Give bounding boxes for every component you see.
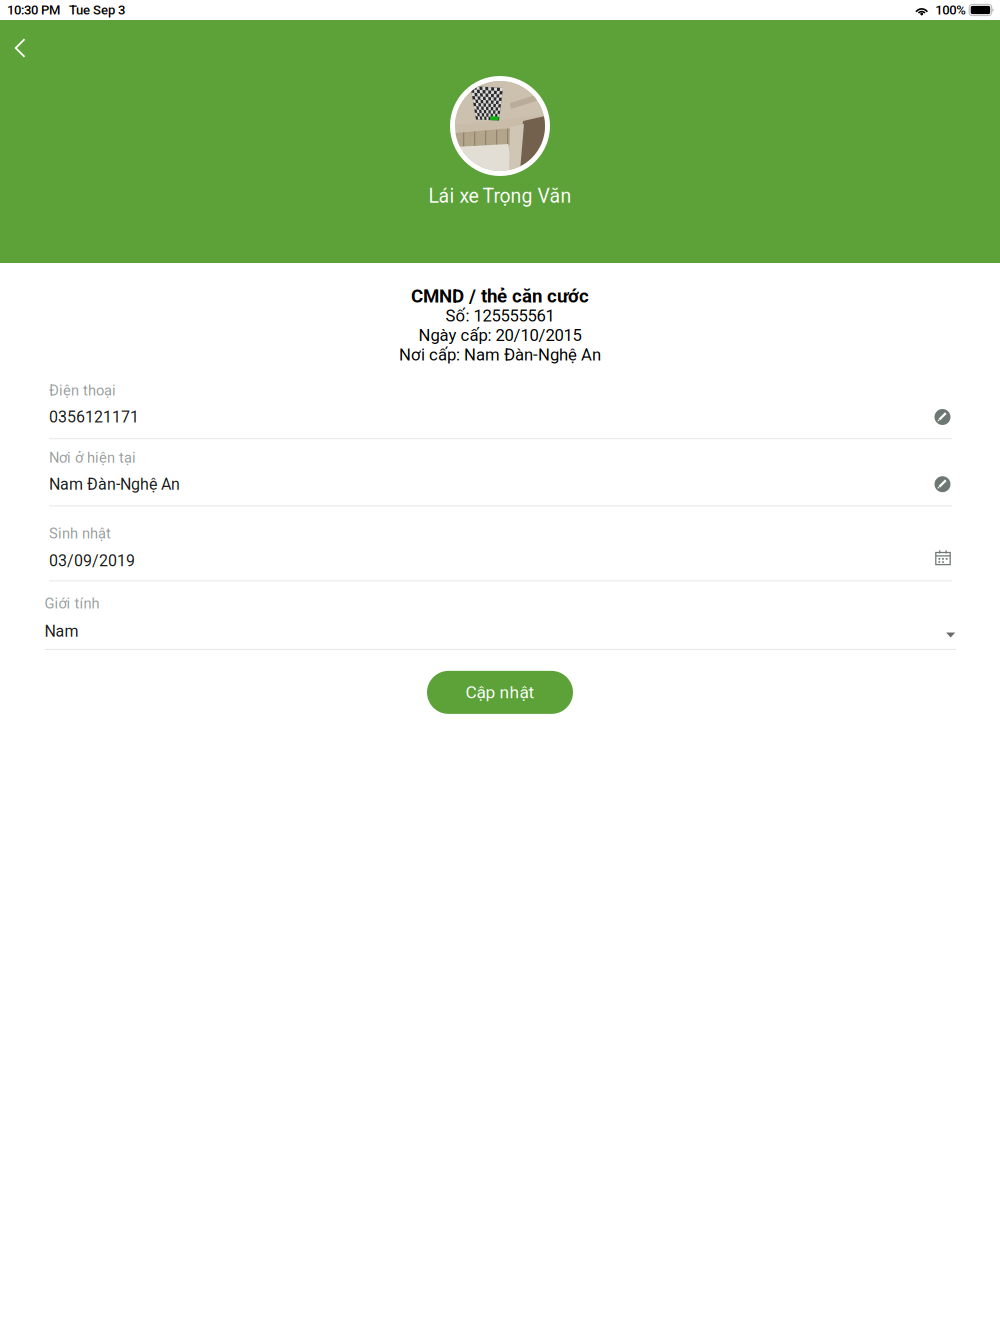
button[interactable]: Edit phone number	[933, 409, 952, 425]
staticText: Lái xe Trọng Văn	[428, 185, 571, 207]
button[interactable]: Cập nhật	[427, 671, 573, 714]
staticText: CMND / thẻ căn cước	[411, 285, 589, 307]
staticText: Số: 125555561	[445, 306, 554, 325]
staticText: Nơi cấp: Nam Đàn-Nghệ An	[399, 345, 601, 364]
staticText: Nam	[44, 622, 78, 641]
staticText: Giới tính	[44, 595, 99, 612]
staticText: Cập nhật	[465, 682, 534, 702]
staticText: 03/09/2019	[49, 551, 135, 570]
staticText: 10:30 PM	[7, 2, 60, 18]
staticText: Nơi ở hiện tại	[49, 449, 136, 466]
button[interactable]: Edit current address	[933, 476, 952, 492]
staticText: Nam Đàn-Nghệ An	[49, 475, 180, 494]
staticText: 100%	[929, 2, 966, 18]
staticText: Tue Sep 3	[60, 2, 125, 18]
staticText: 0356121171	[49, 408, 139, 426]
staticText: Điện thoại	[49, 382, 116, 399]
button[interactable]: Pick birth date	[934, 549, 952, 565]
button[interactable]: Back	[0, 28, 40, 68]
staticText: Sinh nhật	[49, 525, 111, 542]
staticText: Ngày cấp: 20/10/2015	[418, 325, 581, 345]
button[interactable]: Choose gender	[946, 632, 956, 638]
